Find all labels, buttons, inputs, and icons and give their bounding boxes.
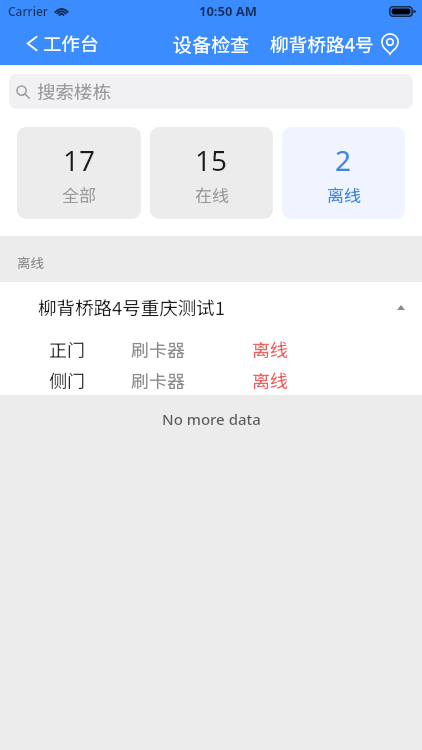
staticText: 2: [335, 141, 352, 179]
staticText: 柳背桥路4号: [270, 30, 374, 57]
staticText: 刷卡器: [131, 367, 185, 393]
staticText: 柳背桥路4号重庆测试1: [38, 294, 226, 321]
staticText: 17: [63, 141, 96, 179]
staticText: 刷卡器: [131, 336, 185, 362]
staticText: 离线: [17, 252, 44, 272]
staticText: 设备检查: [173, 30, 250, 58]
button[interactable]: 侧门: [0, 364, 422, 395]
staticText: 离线: [327, 182, 361, 207]
staticText: 15: [195, 141, 228, 179]
staticText: 10:50 AM: [199, 2, 258, 20]
button[interactable]: 柳背桥路4号重庆测试1: [0, 282, 422, 333]
button[interactable]: 2: [282, 127, 405, 219]
button[interactable]: 柳背桥路4号: [264, 22, 422, 65]
other: Location: [381, 33, 399, 55]
staticText: 在线: [195, 182, 229, 207]
other: Collapse: [397, 305, 405, 310]
staticText: 工作台: [43, 30, 99, 57]
button[interactable]: 正门: [0, 333, 422, 364]
staticText: 离线: [252, 367, 288, 393]
button[interactable]: 15: [150, 127, 273, 219]
staticText: No more data: [162, 409, 261, 429]
staticText: 搜索楼栋: [37, 78, 112, 105]
staticText: 侧门: [49, 367, 85, 393]
staticText: Carrier: [8, 3, 48, 19]
staticText: 全部: [62, 182, 96, 207]
staticText: 正门: [49, 336, 85, 362]
button[interactable]: 17: [17, 127, 141, 219]
button[interactable]: 搜索楼栋: [9, 74, 413, 109]
button[interactable]: 工作台: [0, 22, 109, 65]
staticText: 离线: [252, 336, 288, 362]
